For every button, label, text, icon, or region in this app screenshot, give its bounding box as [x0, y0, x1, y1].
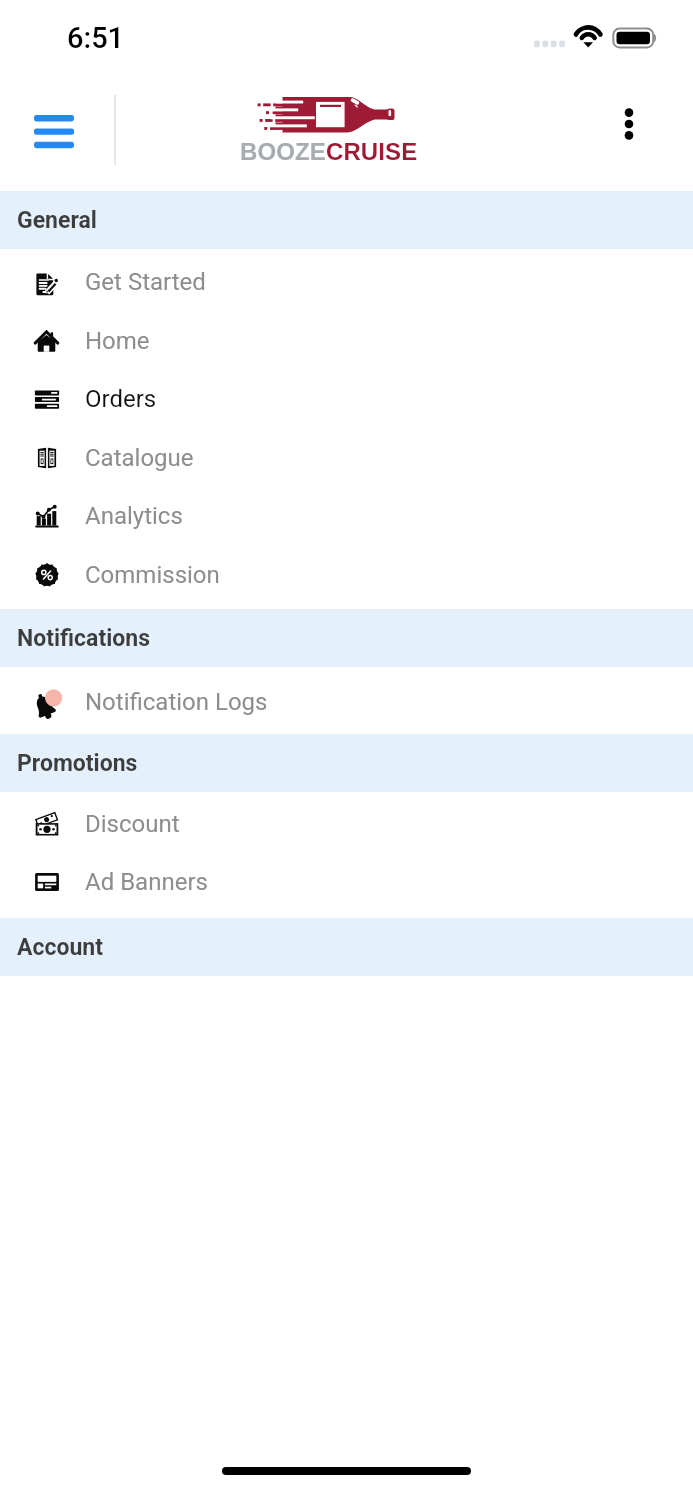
button[interactable]: Analytics	[0, 487, 693, 545]
button[interactable]: Ad Banners	[0, 853, 693, 911]
staticText: General	[17, 207, 97, 234]
button[interactable]: Catalogue	[0, 429, 693, 487]
staticText: Catalogue	[85, 444, 194, 472]
button[interactable]: Notification Logs	[0, 673, 693, 731]
staticText: CRUISE	[326, 138, 418, 165]
staticText: BOOZE	[240, 138, 326, 165]
staticText: Account	[17, 934, 103, 961]
button[interactable]: Get Started	[0, 253, 693, 311]
staticText: Promotions	[17, 750, 138, 777]
staticText: Notification Logs	[85, 688, 268, 716]
staticText: 6:51	[67, 21, 125, 55]
button[interactable]: More options	[608, 95, 650, 153]
staticText: Notifications	[17, 625, 150, 652]
button[interactable]: Orders	[0, 370, 693, 428]
staticText: Ad Banners	[85, 868, 208, 896]
button[interactable]: Commission	[0, 546, 693, 604]
staticText: Home	[85, 327, 150, 355]
staticText: Commission	[85, 561, 220, 589]
button[interactable]: Open navigation menu	[18, 99, 90, 165]
staticText: Analytics	[85, 502, 183, 530]
button[interactable]: Home	[0, 312, 693, 370]
button[interactable]: Discount	[0, 795, 693, 853]
staticText: Orders	[85, 385, 157, 413]
staticText: Discount	[85, 810, 180, 838]
staticText: Get Started	[85, 268, 206, 296]
